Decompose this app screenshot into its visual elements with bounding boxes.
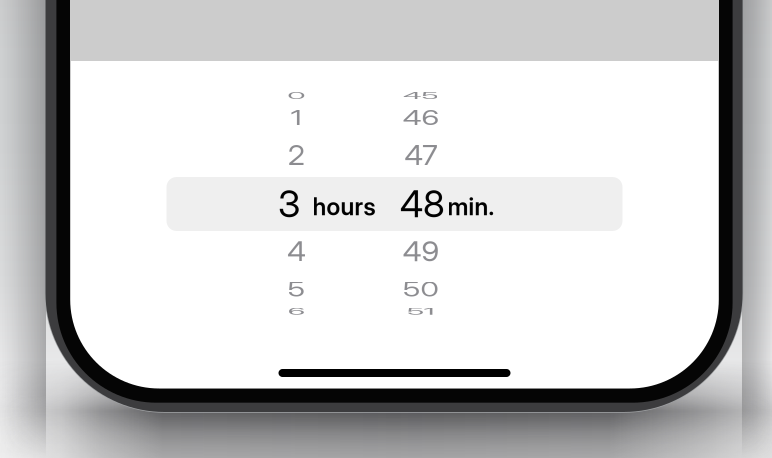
staticText: 3 bbox=[278, 181, 300, 226]
staticText: hours bbox=[312, 192, 375, 221]
staticText: 50 bbox=[398, 267, 443, 312]
staticText: 5 bbox=[285, 267, 307, 312]
staticText: 49 bbox=[398, 228, 443, 274]
staticText: 6 bbox=[285, 289, 307, 334]
staticText: 1 bbox=[289, 95, 303, 140]
staticText: 45 bbox=[398, 73, 443, 118]
staticText: 47 bbox=[400, 132, 441, 178]
staticText: 2 bbox=[286, 132, 307, 178]
staticText: 46 bbox=[398, 95, 443, 140]
staticText: 0 bbox=[285, 73, 308, 118]
staticText: 48 bbox=[400, 181, 445, 226]
staticText: 4 bbox=[285, 228, 308, 274]
staticText: 51 bbox=[403, 289, 438, 334]
staticText: min. bbox=[447, 192, 494, 221]
